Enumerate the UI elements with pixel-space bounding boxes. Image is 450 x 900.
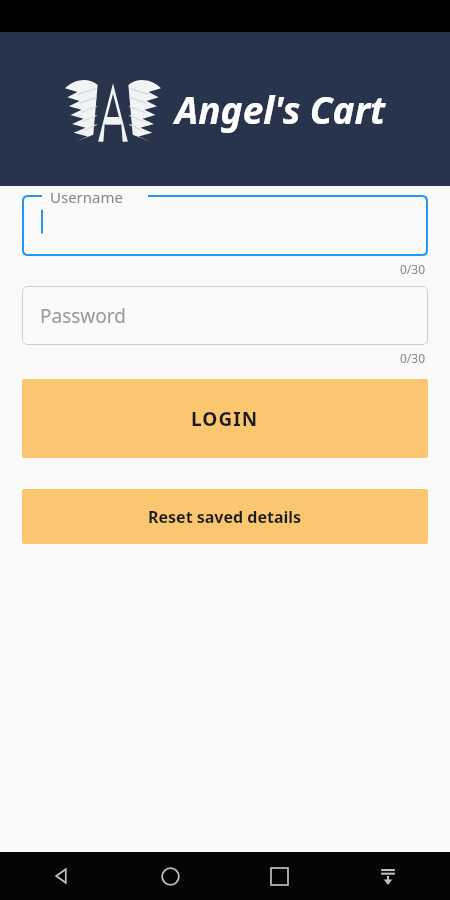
- button[interactable]: Hide keyboard: [365, 853, 411, 899]
- staticText: LOGIN: [191, 406, 259, 432]
- button[interactable]: Reset saved details: [22, 489, 428, 544]
- staticText: Password: [40, 303, 126, 329]
- staticText: Angel's Cart: [175, 84, 386, 134]
- button[interactable]: Username: [22, 195, 428, 256]
- button[interactable]: Home: [147, 853, 193, 899]
- staticText: Username: [50, 187, 123, 207]
- staticText: 0/30: [400, 350, 426, 366]
- button[interactable]: LOGIN: [22, 379, 428, 458]
- button[interactable]: Password: [22, 286, 428, 345]
- button[interactable]: Back: [38, 853, 84, 899]
- staticText: Reset saved details: [148, 506, 302, 528]
- staticText: 0/30: [400, 261, 426, 277]
- button[interactable]: Recent apps: [256, 853, 302, 899]
